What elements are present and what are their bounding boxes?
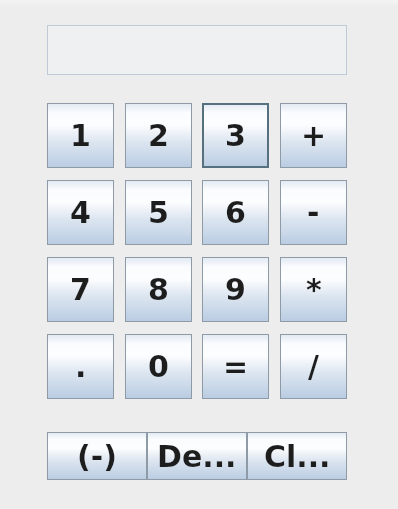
button[interactable]: -: [280, 180, 347, 245]
button[interactable]: 6: [202, 180, 269, 245]
button[interactable]: +: [280, 103, 347, 168]
button[interactable]: 1: [47, 103, 114, 168]
staticText: =: [223, 349, 249, 384]
button[interactable]: 7: [47, 257, 114, 322]
button[interactable]: 2: [125, 103, 192, 168]
staticText: De...: [157, 439, 237, 474]
staticText: Cl...: [264, 439, 331, 474]
button[interactable]: 8: [125, 257, 192, 322]
staticText: 1: [70, 118, 91, 153]
staticText: 2: [148, 118, 169, 153]
staticText: 9: [225, 272, 246, 307]
button[interactable]: (-): [47, 432, 147, 480]
button[interactable]: 0: [125, 334, 192, 399]
staticText: .: [75, 349, 87, 384]
button[interactable]: *: [280, 257, 347, 322]
staticText: 6: [225, 195, 246, 230]
button[interactable]: 3: [202, 103, 269, 168]
staticText: 3: [225, 118, 246, 153]
staticText: -: [307, 195, 320, 230]
button[interactable]: /: [280, 334, 347, 399]
staticText: 4: [70, 195, 91, 230]
button[interactable]: .: [47, 334, 114, 399]
staticText: +: [301, 118, 327, 153]
button[interactable]: =: [202, 334, 269, 399]
button[interactable]: Cl...: [247, 432, 347, 480]
staticText: 8: [148, 272, 169, 307]
staticText: 7: [70, 272, 91, 307]
staticText: 0: [148, 349, 169, 384]
button[interactable]: De...: [147, 432, 247, 480]
staticText: *: [306, 272, 322, 307]
button[interactable]: [47, 25, 347, 75]
staticText: (-): [77, 439, 117, 474]
staticText: /: [308, 349, 319, 384]
button[interactable]: 4: [47, 180, 114, 245]
staticText: 5: [148, 195, 169, 230]
button[interactable]: 5: [125, 180, 192, 245]
button[interactable]: 9: [202, 257, 269, 322]
